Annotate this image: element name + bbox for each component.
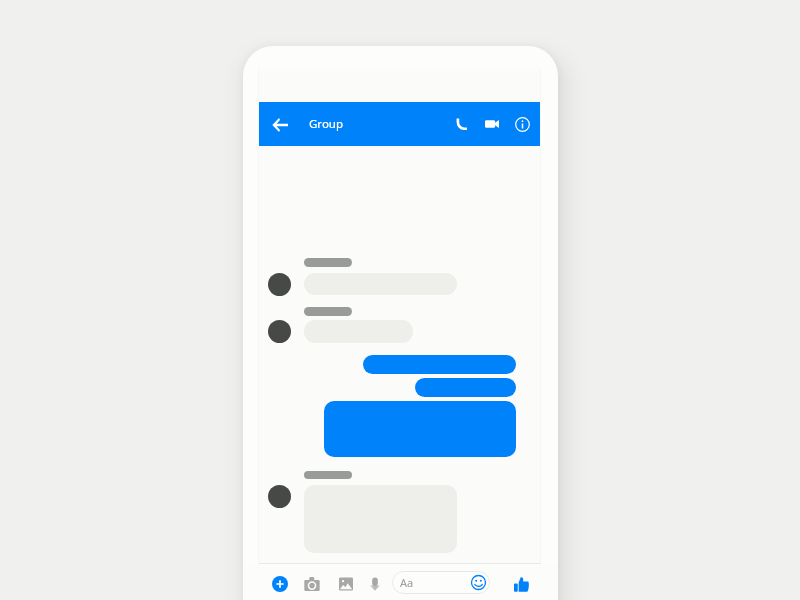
button[interactable]: Send like	[509, 572, 533, 596]
button[interactable]: Back	[263, 108, 296, 141]
button[interactable]: Conversation info	[508, 110, 536, 138]
button[interactable]: Call	[447, 110, 475, 138]
button[interactable]: Open actions	[268, 572, 292, 596]
button[interactable]: Group	[309, 102, 350, 146]
button[interactable]: Aa	[392, 571, 490, 594]
button[interactable]: Gallery	[334, 572, 358, 596]
staticText: Group	[309, 116, 344, 132]
staticText: Aa	[400, 575, 414, 590]
button[interactable]	[363, 355, 516, 374]
button[interactable]	[324, 401, 516, 457]
button[interactable]: Video call	[478, 110, 506, 138]
button[interactable]: Camera	[300, 572, 324, 596]
button[interactable]	[415, 378, 516, 397]
button[interactable]: Record voice message	[363, 572, 387, 596]
